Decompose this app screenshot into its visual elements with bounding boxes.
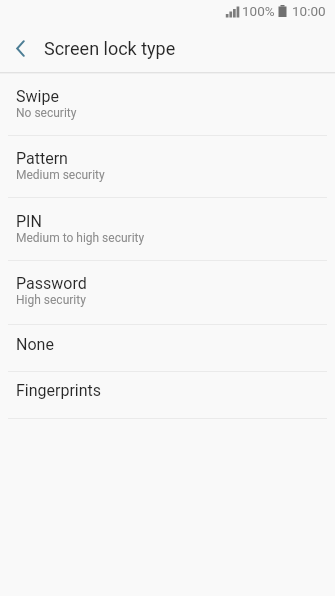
button[interactable]: Fingerprints bbox=[0, 372, 335, 418]
staticText: Password bbox=[16, 274, 87, 293]
button[interactable]: Pattern bbox=[0, 136, 335, 197]
staticText: 100% bbox=[242, 3, 275, 19]
staticText: Fingerprints bbox=[16, 381, 102, 400]
staticText: Swipe bbox=[16, 87, 59, 106]
staticText: No security bbox=[16, 106, 77, 120]
staticText: Pattern bbox=[16, 149, 68, 168]
button[interactable]: Password bbox=[0, 261, 335, 324]
staticText: Medium to high security bbox=[16, 231, 145, 245]
button[interactable]: None bbox=[0, 325, 335, 371]
button[interactable]: Swipe bbox=[0, 74, 335, 135]
button[interactable] bbox=[0, 24, 40, 72]
staticText: Medium security bbox=[16, 168, 105, 182]
staticText: Screen lock type bbox=[44, 38, 176, 59]
staticText: None bbox=[16, 335, 54, 354]
button[interactable]: PIN bbox=[0, 198, 335, 260]
staticText: High security bbox=[16, 293, 86, 307]
staticText: 10:00 bbox=[292, 3, 326, 19]
staticText: PIN bbox=[16, 212, 42, 231]
